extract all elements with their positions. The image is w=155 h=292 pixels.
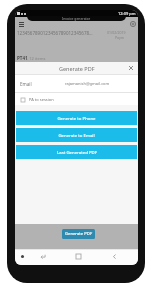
staticText: Email: [20, 81, 32, 87]
staticText: Generate to Phone: [57, 115, 96, 121]
button[interactable]: Previous: [110, 252, 119, 261]
staticText: 01/02/2019: [107, 30, 126, 35]
button[interactable]: Generate to Email: [16, 128, 137, 142]
button[interactable]: Back: [39, 252, 48, 261]
button[interactable]: Generate PDF: [62, 229, 95, 239]
staticText: - 12 items: [27, 56, 46, 61]
button[interactable]: Last Generated PDF: [16, 145, 137, 159]
staticText: Paym: [115, 35, 125, 40]
staticText: Invoice generator: [62, 16, 91, 21]
staticText: Generate to Email: [58, 132, 95, 138]
button[interactable]: Email: [15, 75, 138, 92]
button[interactable]: Close: [128, 65, 134, 71]
button[interactable]: PA to session: [21, 97, 54, 102]
staticText: rajamanish@gmail.com: [65, 81, 110, 86]
button[interactable]: Assistant: [18, 252, 26, 260]
staticText: PA to session: [29, 97, 54, 102]
button[interactable]: Menu: [19, 22, 24, 27]
button[interactable]: Recents: [74, 252, 83, 261]
button[interactable]: Generate to Phone: [16, 111, 137, 125]
staticText: Generate PDF: [59, 65, 95, 72]
staticText: 1234567890123456789012345678…: [17, 30, 93, 36]
staticText: 12:09 pm: [118, 11, 136, 16]
button[interactable]: Add: [130, 21, 136, 27]
staticText: Last Generated PDF: [57, 149, 97, 155]
staticText: PT41: [17, 55, 28, 61]
staticText: Generate PDF: [65, 231, 93, 237]
